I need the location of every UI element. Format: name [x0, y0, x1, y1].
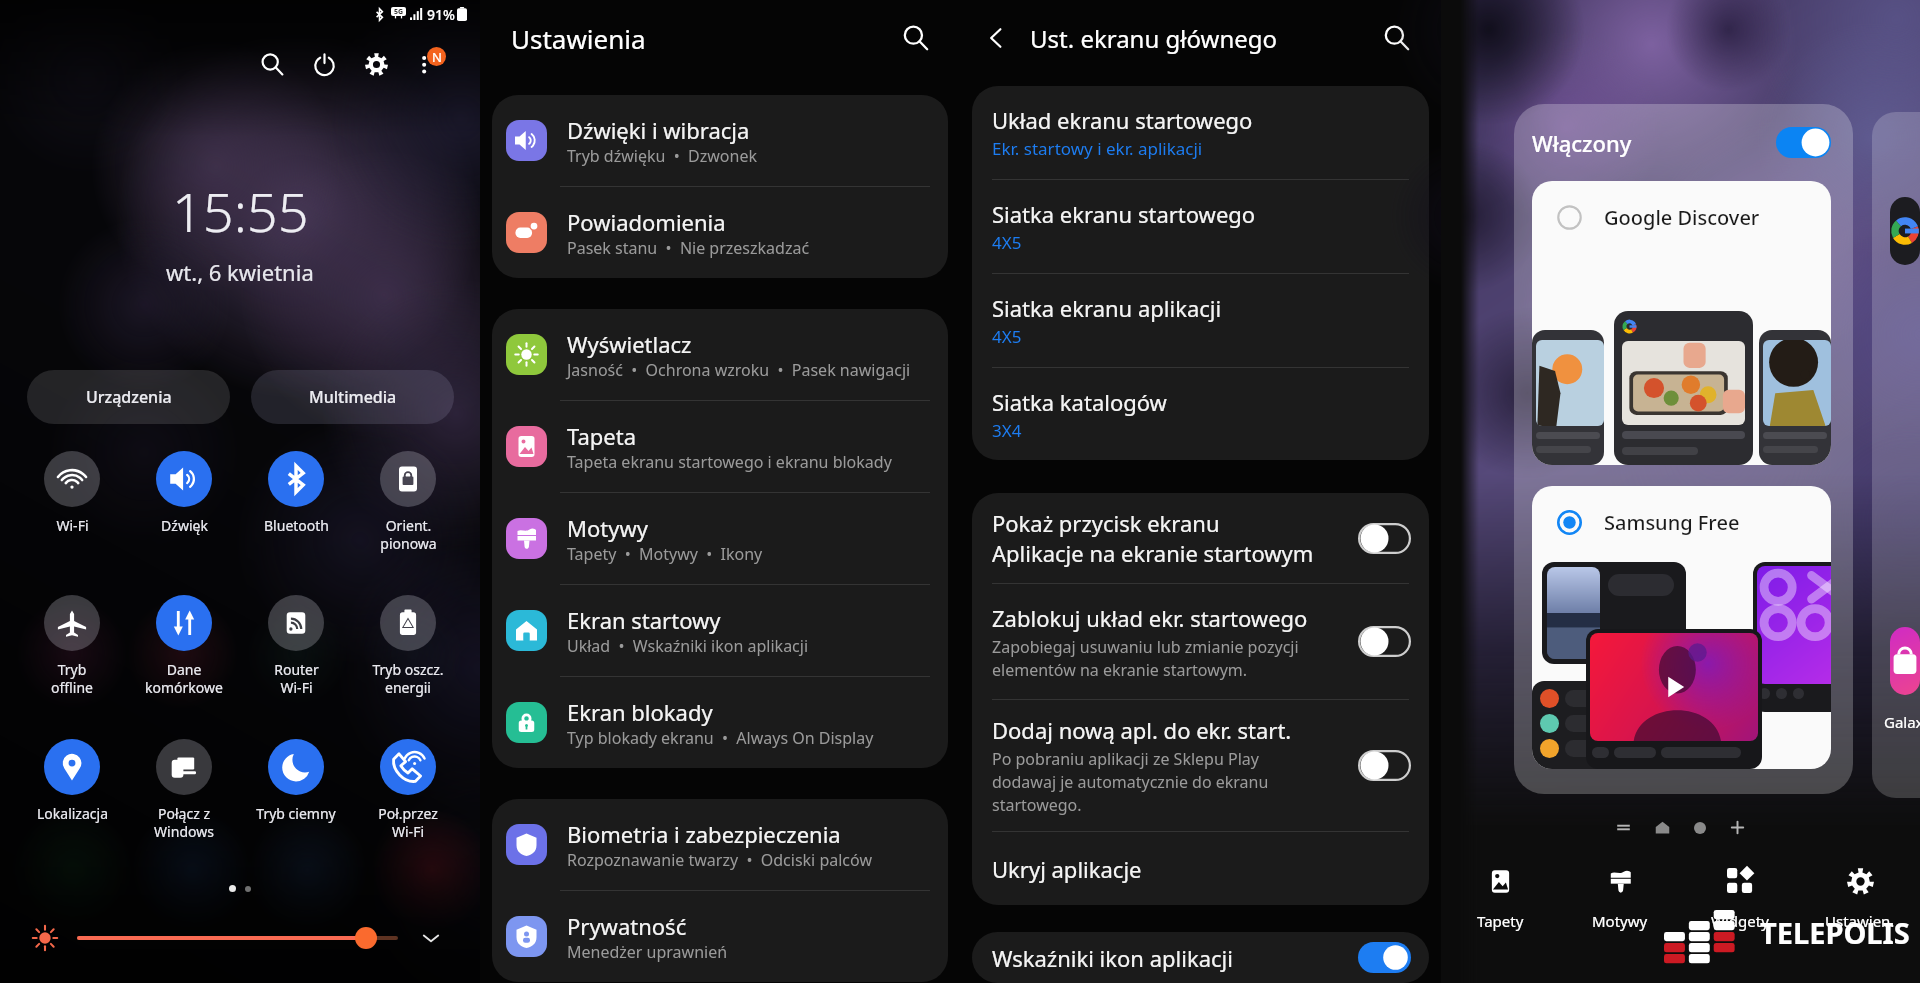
button[interactable]: Tryb oszcz. energii: [352, 595, 464, 697]
button[interactable]: Ustawien.: [1800, 858, 1920, 958]
button[interactable]: Ekran startowy: [492, 585, 948, 676]
button[interactable]: Wi-Fi: [16, 451, 128, 535]
button[interactable]: Siatka katalogów: [972, 368, 1429, 460]
staticText: Ekran blokady: [567, 697, 713, 727]
button[interactable]: Wstecz: [974, 16, 1018, 60]
staticText: Lokalizacja: [37, 804, 108, 823]
button[interactable]: Dźwięki i wibracja: [492, 95, 948, 186]
staticText: Tapeta: [567, 421, 637, 451]
button[interactable]: Ukryj aplikacje: [972, 832, 1429, 905]
staticText: TELEPOLIS: [1760, 913, 1910, 952]
staticText: Wyświetlacz: [567, 329, 692, 359]
button[interactable]: Przełącznik: [1358, 942, 1411, 973]
staticText: Menedżer uprawnień: [567, 941, 728, 963]
button[interactable]: Bluetooth: [240, 451, 352, 535]
staticText: wt., 6 kwietnia: [166, 257, 314, 287]
staticText: Motywy: [1592, 911, 1648, 931]
button[interactable]: Przełącznik: [1358, 523, 1411, 554]
staticText: Siatka ekranu aplikacji: [992, 293, 1222, 323]
button[interactable]: Wskaźniki ikon aplikacji: [972, 932, 1429, 983]
button[interactable]: Samsung Free: [1532, 486, 1831, 769]
staticText: Siatka ekranu startowego: [992, 199, 1256, 229]
staticText: Wi-Fi: [56, 516, 89, 535]
button[interactable]: Dane komórkowe: [128, 595, 240, 697]
button[interactable]: Ustawienia: [354, 42, 398, 86]
staticText: Powiadomienia: [567, 207, 726, 237]
button[interactable]: Układ ekranu startowego: [972, 86, 1429, 179]
staticText: Jasność • Ochrona wzroku • Pasek nawigac…: [567, 359, 911, 381]
staticText: Tryb ciemny: [256, 804, 336, 823]
button[interactable]: Zablokuj układ ekr. startowego: [972, 584, 1429, 699]
button[interactable]: Google Discover: [1532, 181, 1831, 465]
button[interactable]: Urządzenia: [27, 370, 230, 424]
button[interactable]: Ekran blokady: [492, 677, 948, 768]
button[interactable]: Tryb ciemny: [240, 739, 352, 823]
button[interactable]: Wyświetlacz: [492, 309, 948, 400]
button[interactable]: Multimedia: [251, 370, 454, 424]
staticText: Rozpoznawanie twarzy • Odciski palców: [567, 849, 872, 871]
staticText: Układ • Wskaźniki ikon aplikacji: [567, 635, 809, 657]
staticText: Po pobraniu aplikacji ze Sklepu Play dod…: [992, 748, 1269, 816]
staticText: Google Discover: [1604, 204, 1760, 231]
staticText: Tryb oszcz. energii: [372, 660, 444, 697]
staticText: Tryb dźwięku • Dzwonek: [567, 145, 757, 167]
staticText: Wskaźniki ikon aplikacji: [992, 943, 1358, 973]
button[interactable]: Prywatność: [492, 891, 948, 982]
staticText: Ekran startowy: [567, 605, 721, 635]
staticText: Ustawien.: [1825, 911, 1895, 931]
button[interactable]: Dodaj nową apl. do ekr. start.: [972, 700, 1429, 831]
button[interactable]: Tapeta: [492, 401, 948, 492]
button[interactable]: Przełącznik: [1358, 626, 1411, 657]
button[interactable]: Szukaj: [894, 16, 938, 60]
staticText: Multimedia: [309, 386, 397, 408]
button[interactable]: Połącz z Windows: [128, 739, 240, 841]
staticText: Urządzenia: [86, 386, 172, 408]
staticText: Motywy: [567, 513, 648, 543]
button[interactable]: Powiadomienia: [492, 187, 948, 278]
button[interactable]: Siatka ekranu aplikacji: [972, 274, 1429, 367]
staticText: Dane komórkowe: [145, 660, 223, 697]
staticText: 4X5: [992, 325, 1022, 348]
button[interactable]: Router Wi-Fi: [240, 595, 352, 697]
staticText: Ekr. startowy i ekr. aplikacji: [992, 137, 1203, 160]
staticText: Biometria i zabezpieczenia: [567, 819, 841, 849]
staticText: Ustawienia: [511, 21, 646, 56]
button[interactable]: Pokaż przycisk ekranu Aplikacje na ekran…: [972, 493, 1429, 583]
staticText: Włączony: [1532, 128, 1632, 158]
button[interactable]: Rozwiń: [416, 923, 446, 953]
staticText: Pasek stanu • Nie przeszkadzać: [567, 237, 810, 259]
staticText: Tapety: [1477, 911, 1524, 931]
staticText: Galaxy: [1884, 712, 1920, 732]
staticText: Tapeta ekranu startowego i ekranu blokad…: [567, 451, 892, 473]
staticText: Układ ekranu startowego: [992, 105, 1253, 135]
staticText: Poł.przez Wi-Fi: [378, 804, 438, 841]
button[interactable]: Motywy: [492, 493, 948, 584]
button[interactable]: Szukaj: [250, 42, 294, 86]
staticText: Dźwięki i wibracja: [567, 115, 750, 145]
button[interactable]: Tapety: [1441, 858, 1560, 958]
staticText: 91%: [427, 5, 455, 24]
staticText: Bluetooth: [264, 516, 329, 535]
button[interactable]: Dźwięk: [128, 451, 240, 535]
button[interactable]: Szukaj: [1375, 16, 1419, 60]
button[interactable]: Zasilanie: [302, 42, 346, 86]
button[interactable]: Więcej opcji: [406, 42, 450, 86]
button[interactable]: Widgety: [1680, 858, 1800, 958]
button[interactable]: Siatka ekranu startowego: [972, 180, 1429, 273]
staticText: 15:55: [172, 174, 309, 248]
button[interactable]: Orient. pionowa: [352, 451, 464, 553]
button[interactable]: Motywy: [1560, 858, 1680, 958]
staticText: Samsung Free: [1604, 509, 1740, 536]
button[interactable]: Poł.przez Wi-Fi: [352, 739, 464, 841]
staticText: Router Wi-Fi: [274, 660, 319, 697]
staticText: Dźwięk: [161, 516, 208, 535]
staticText: Zapobiegaj usuwaniu lub zmianie pozycji …: [992, 636, 1299, 681]
staticText: Dodaj nową apl. do ekr. start.: [992, 715, 1292, 745]
staticText: Tryb offline: [51, 660, 93, 697]
button[interactable]: Lokalizacja: [16, 739, 128, 823]
button[interactable]: Przełącznik: [1776, 127, 1831, 158]
button[interactable]: Tryb offline: [16, 595, 128, 697]
staticText: Tapety • Motywy • Ikony: [567, 543, 763, 565]
button[interactable]: Przełącznik: [1358, 750, 1411, 781]
button[interactable]: Biometria i zabezpieczenia: [492, 799, 948, 890]
